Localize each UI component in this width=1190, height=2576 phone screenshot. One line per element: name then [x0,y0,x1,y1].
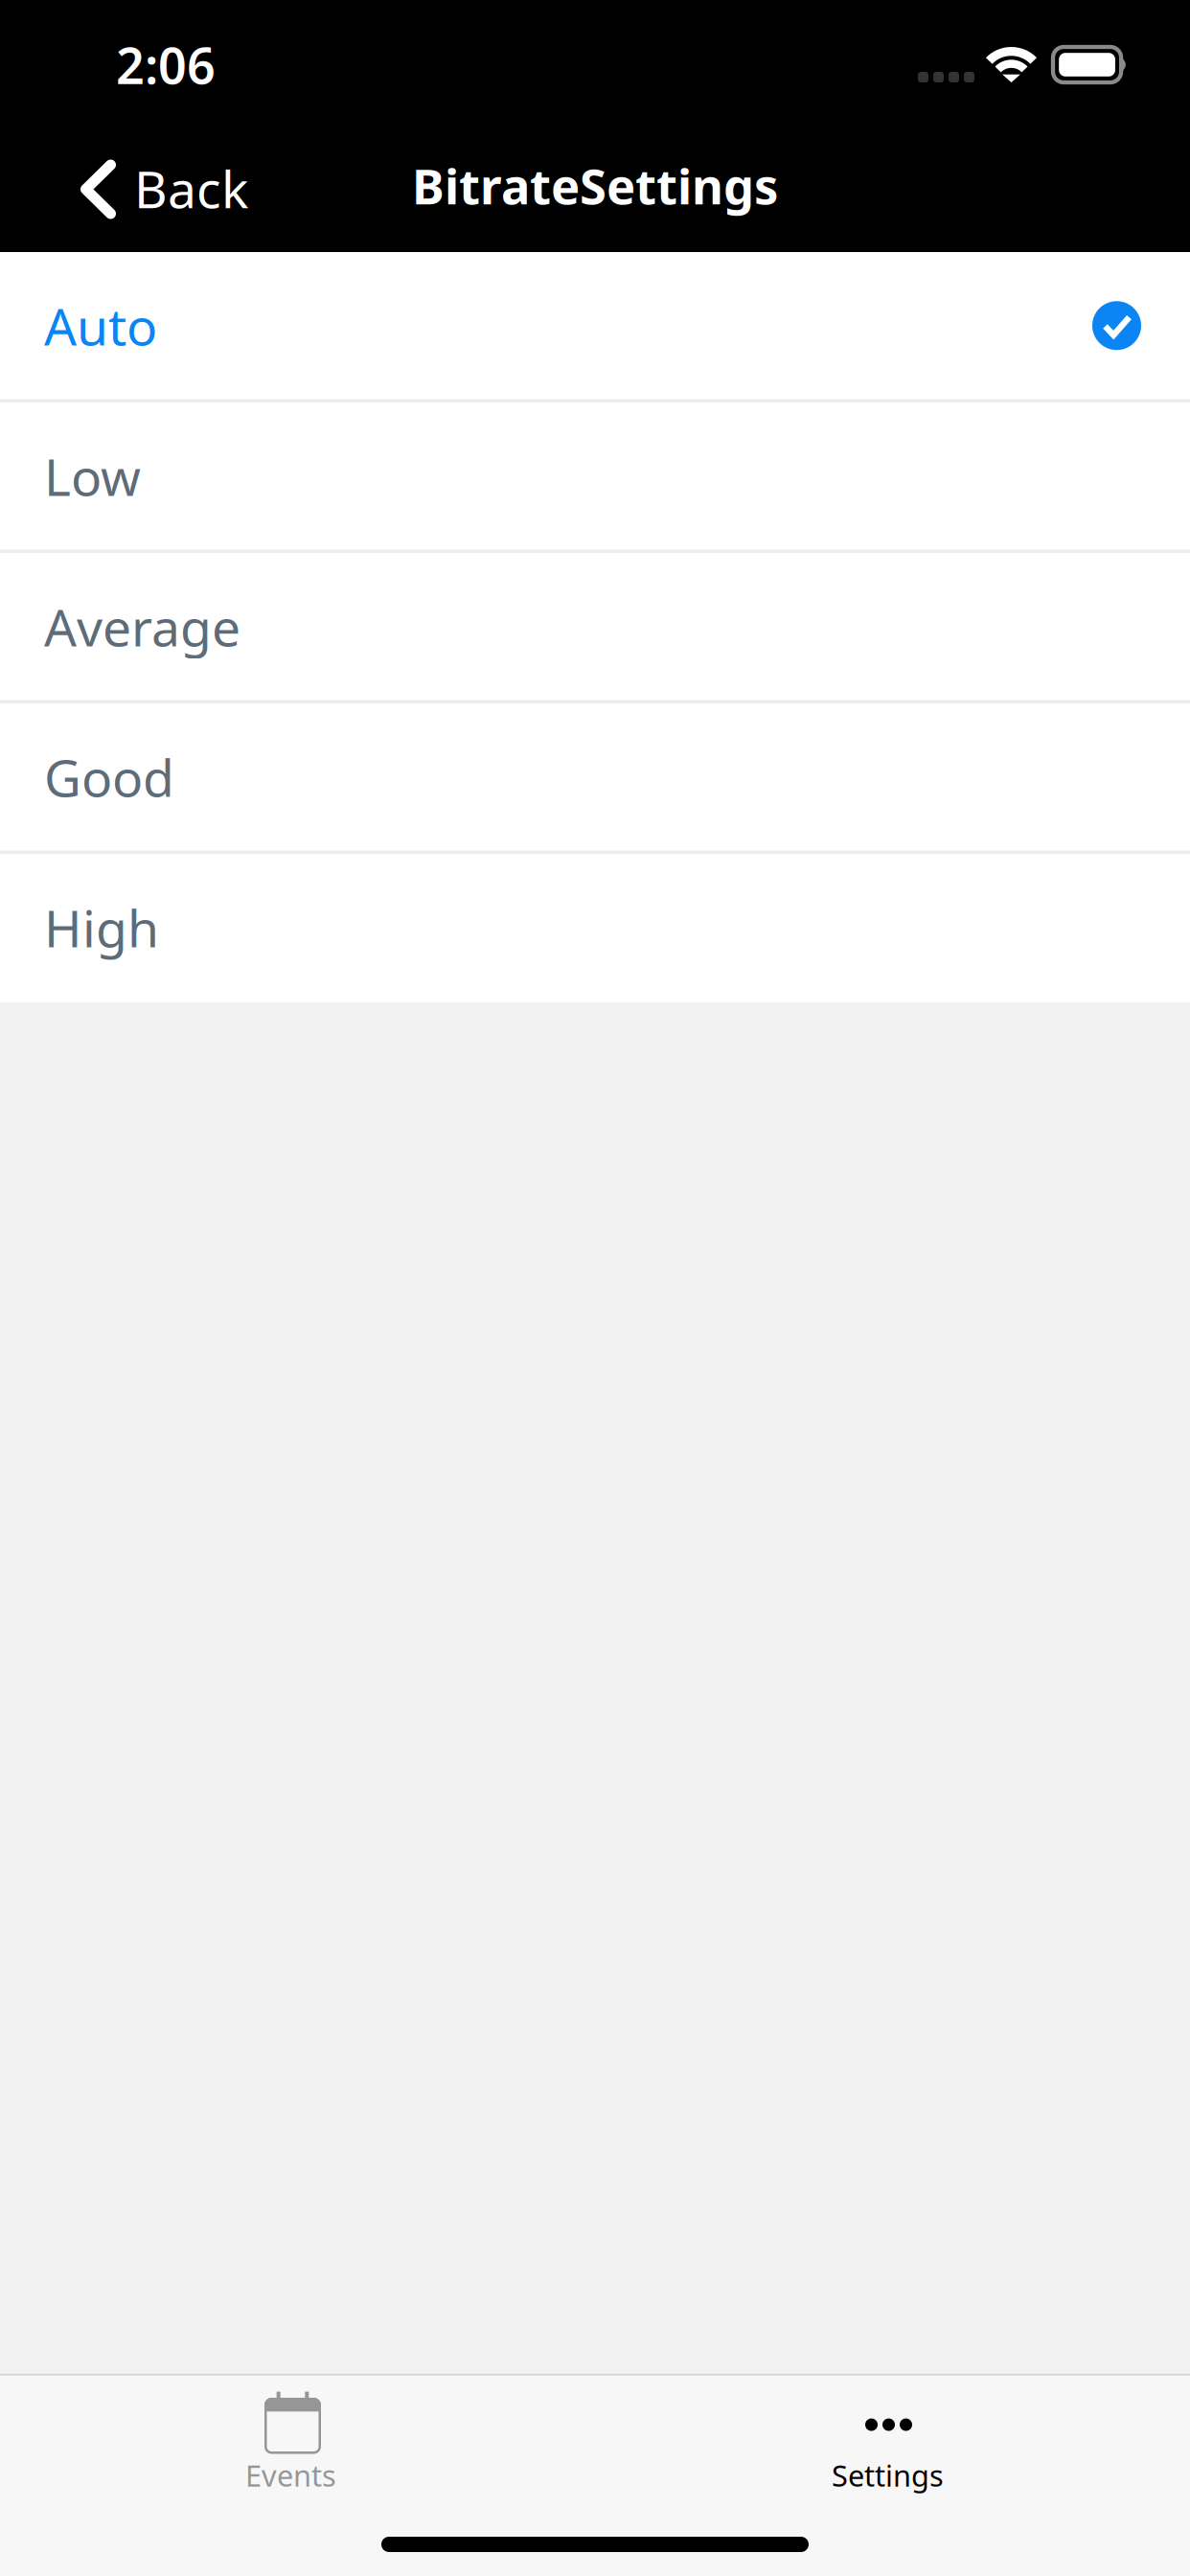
button[interactable]: Good [0,703,1190,854]
button[interactable]: Low [0,402,1190,553]
staticText: High [44,893,159,961]
staticText: Settings [832,2456,944,2495]
button[interactable]: Auto [0,252,1190,402]
staticText: Good [44,743,174,811]
button[interactable]: Events [0,2375,595,2505]
staticText: Average [44,593,240,660]
button[interactable]: Average [0,553,1190,703]
staticText: BitrateSettings [412,153,778,218]
button[interactable]: Settings [595,2378,1190,2502]
button[interactable]: High [0,854,1190,1002]
staticText: Back [134,154,248,222]
staticText: 2:06 [116,32,216,98]
staticText: Events [245,2456,336,2495]
staticText: Auto [44,292,157,359]
button[interactable]: Back [0,126,277,252]
staticText: Low [44,442,141,510]
